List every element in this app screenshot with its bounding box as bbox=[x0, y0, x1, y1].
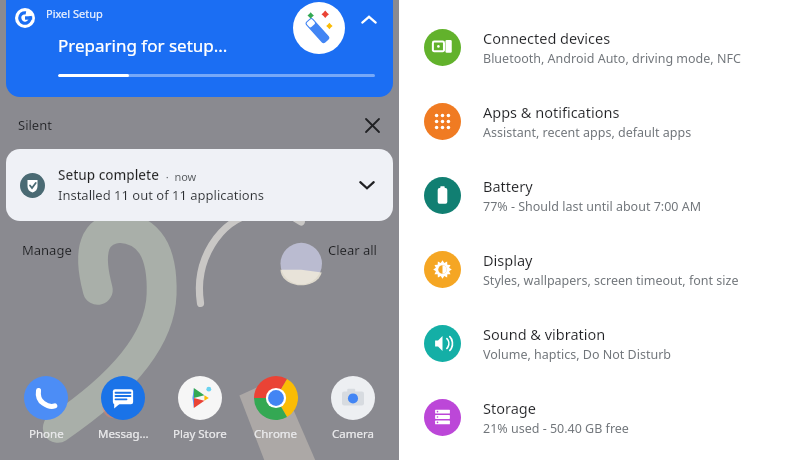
button[interactable]: Camera bbox=[319, 376, 387, 442]
button[interactable]: Chrome bbox=[242, 376, 310, 442]
staticText: Assistant, recent apps, default apps bbox=[483, 124, 692, 141]
staticText: Clear all bbox=[328, 241, 377, 259]
staticText: Messag… bbox=[98, 426, 149, 442]
staticText: · now bbox=[160, 169, 197, 184]
staticText: 77% - Should last until about 7:00 AM bbox=[483, 198, 702, 215]
staticText: Styles, wallpapers, screen timeout, font… bbox=[483, 272, 739, 289]
staticText: Storage bbox=[483, 398, 536, 418]
staticText: Preparing for setup... bbox=[58, 34, 228, 57]
button[interactable]: Collapse bbox=[355, 6, 383, 34]
staticText: Installed 11 out of 11 applications bbox=[58, 186, 264, 204]
staticText: Bluetooth, Android Auto, driving mode, N… bbox=[483, 50, 741, 67]
staticText: 21% used - 50.40 GB free bbox=[483, 420, 629, 437]
staticText: Silent bbox=[18, 116, 52, 134]
staticText: Volume, haptics, Do Not Disturb bbox=[483, 346, 672, 363]
staticText: Manage bbox=[22, 241, 72, 259]
staticText: Play Store bbox=[173, 426, 227, 442]
staticText: Phone bbox=[29, 426, 64, 442]
staticText: Sound & vibration bbox=[483, 324, 606, 344]
button[interactable]: Phone bbox=[12, 376, 80, 442]
button[interactable]: Apps & notifications bbox=[399, 93, 796, 150]
staticText: Connected devices bbox=[483, 28, 611, 48]
staticText: Battery bbox=[483, 176, 533, 196]
button[interactable]: Battery bbox=[399, 167, 796, 224]
staticText: Apps & notifications bbox=[483, 102, 620, 122]
button[interactable]: Manage bbox=[18, 237, 76, 263]
button[interactable]: Setup complete bbox=[6, 149, 393, 221]
staticText: Camera bbox=[332, 426, 374, 442]
staticText: Chrome bbox=[254, 426, 298, 442]
button[interactable]: Pixel Setup bbox=[6, 0, 393, 97]
button[interactable]: Clear all bbox=[324, 237, 381, 263]
staticText: Pixel Setup bbox=[46, 6, 103, 21]
button[interactable]: Play Store bbox=[166, 376, 234, 442]
button[interactable]: Storage bbox=[399, 389, 796, 446]
button[interactable]: Sound & vibration bbox=[399, 315, 796, 372]
button[interactable]: Display bbox=[399, 241, 796, 298]
button[interactable]: Connected devices bbox=[399, 19, 796, 76]
staticText: Display bbox=[483, 250, 533, 270]
button[interactable]: Clear silent notifications bbox=[359, 112, 385, 138]
button[interactable]: Messag… bbox=[89, 376, 157, 442]
staticText: Setup complete bbox=[58, 166, 160, 184]
button[interactable]: Expand notification bbox=[353, 171, 381, 199]
